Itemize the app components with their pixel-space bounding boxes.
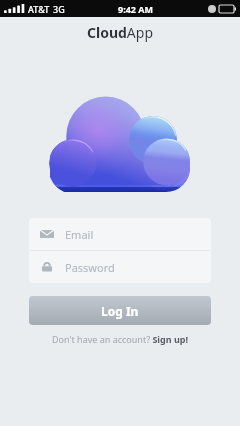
button[interactable]: Password <box>29 251 211 283</box>
button[interactable]: Log In <box>29 296 211 325</box>
staticText: Log In <box>101 303 139 319</box>
button[interactable]: Don't have an account? Sign up! <box>52 333 189 345</box>
button[interactable]: Email <box>29 218 211 250</box>
staticText: Password <box>65 260 115 275</box>
staticText: 9:42 AM <box>118 3 154 15</box>
staticText: 3G <box>53 3 65 15</box>
staticText: Email <box>65 227 94 242</box>
staticText: Don't have an account? Sign up! <box>52 333 189 345</box>
staticText: AT&T <box>28 3 50 15</box>
staticText: CloudApp <box>87 23 154 42</box>
